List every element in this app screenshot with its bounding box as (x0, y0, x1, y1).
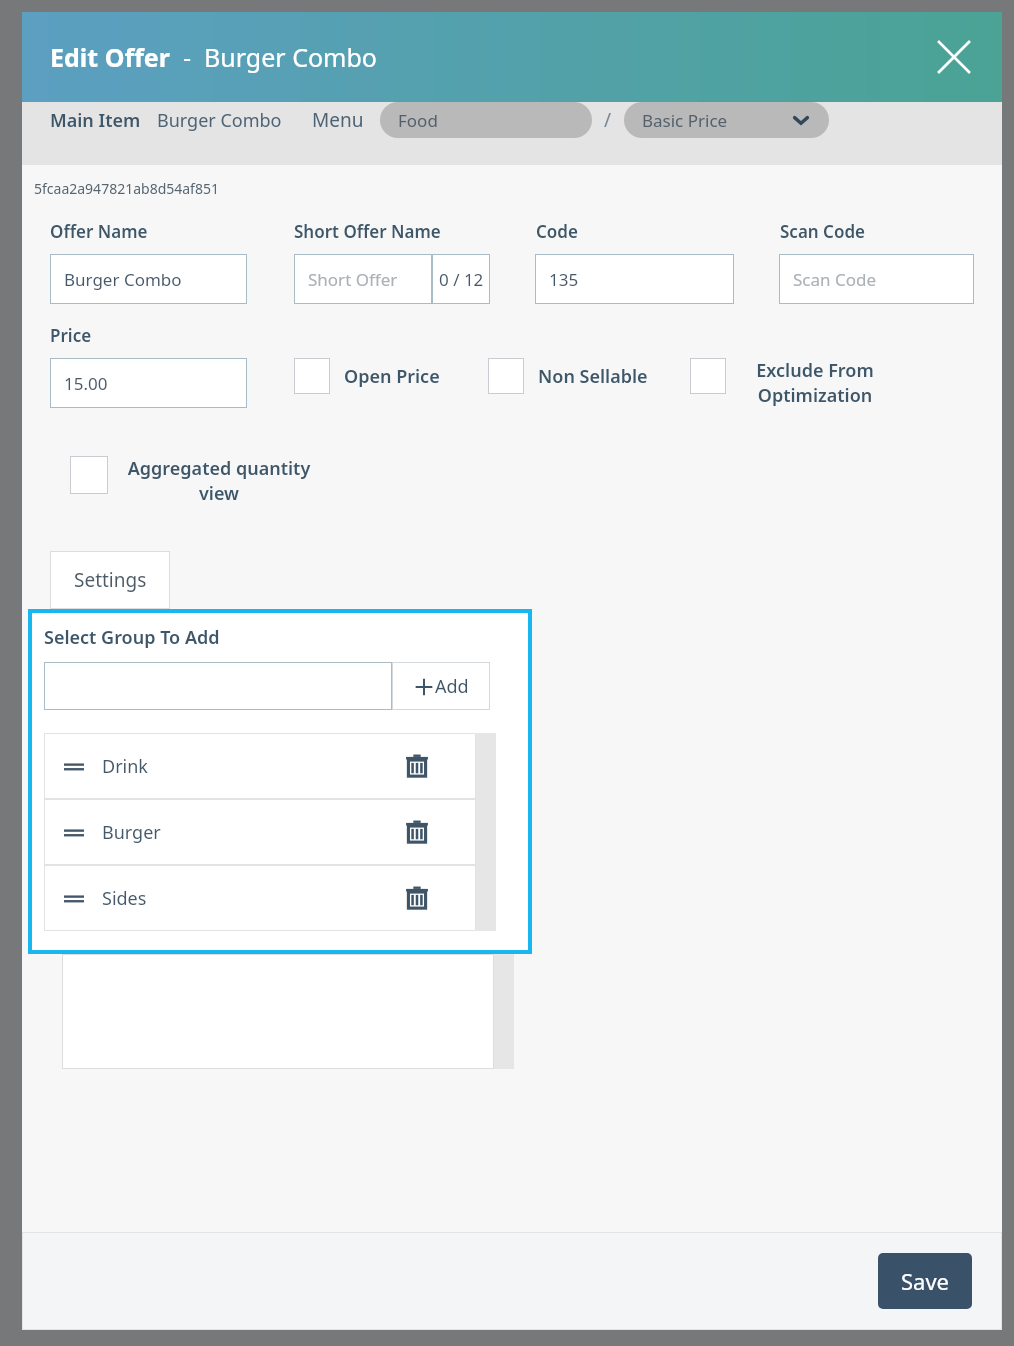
button[interactable]: Delete Burger (404, 819, 430, 845)
staticText: Basic Price (642, 109, 728, 132)
staticText: 5fcaa2a947821ab8d54af851 (34, 179, 219, 198)
staticText: Exclude From Optimization (740, 358, 890, 408)
staticText: Burger (102, 820, 161, 845)
staticText: Drink (102, 754, 148, 779)
staticText: Scan Code (780, 220, 866, 243)
staticText: Add (435, 674, 469, 699)
button[interactable]: Drink (44, 733, 476, 799)
staticText: Food (398, 109, 438, 132)
staticText: Open Price (344, 364, 440, 389)
staticText: 0 / 12 (439, 268, 484, 291)
button[interactable]: Delete Sides (404, 885, 430, 911)
button[interactable]: Burger Combo (50, 254, 247, 304)
staticText: Aggregated quantity view (124, 456, 314, 506)
staticText: Settings (74, 567, 147, 593)
button[interactable]: Checkbox (690, 358, 726, 394)
button[interactable]: Delete Drink (404, 753, 430, 779)
button[interactable]: Checkbox (70, 456, 108, 494)
button[interactable]: Close (928, 31, 980, 83)
button[interactable]: Save (878, 1253, 972, 1309)
staticText: Main Item (50, 108, 141, 133)
button[interactable]: 15.00 (50, 358, 247, 408)
button[interactable]: Scan Code (779, 254, 974, 304)
staticText: Code (536, 220, 578, 243)
staticText: Offer Name (50, 220, 148, 243)
staticText: Burger Combo (64, 268, 182, 291)
staticText: Short Offer Name (294, 220, 441, 243)
staticText: Scan Code (793, 268, 877, 291)
button[interactable]: Checkbox (488, 358, 524, 394)
staticText: Sides (102, 886, 147, 911)
staticText: Select Group To Add (44, 625, 220, 650)
staticText: Menu (312, 107, 364, 133)
button[interactable]: Basic Price (624, 102, 829, 138)
staticText: 15.00 (64, 372, 108, 395)
button[interactable]: Food (380, 102, 592, 138)
staticText: 135 (549, 268, 579, 291)
button[interactable]: Burger (44, 799, 476, 865)
button[interactable]: Add (392, 662, 490, 710)
button[interactable]: 135 (535, 254, 734, 304)
staticText: Edit Offer (50, 40, 170, 74)
staticText: - Burger Combo (170, 40, 377, 74)
button[interactable]: Checkbox (294, 358, 330, 394)
button[interactable]: Short Offer (294, 254, 432, 304)
button[interactable]: Sides (44, 865, 476, 931)
staticText: Price (50, 324, 92, 347)
staticText: Burger Combo (157, 108, 282, 133)
staticText: Save (901, 1266, 950, 1296)
staticText: Short Offer (308, 268, 398, 291)
button[interactable]: Settings (50, 551, 170, 609)
button[interactable] (44, 662, 392, 710)
staticText: / (604, 107, 612, 133)
staticText: Non Sellable (538, 364, 648, 389)
